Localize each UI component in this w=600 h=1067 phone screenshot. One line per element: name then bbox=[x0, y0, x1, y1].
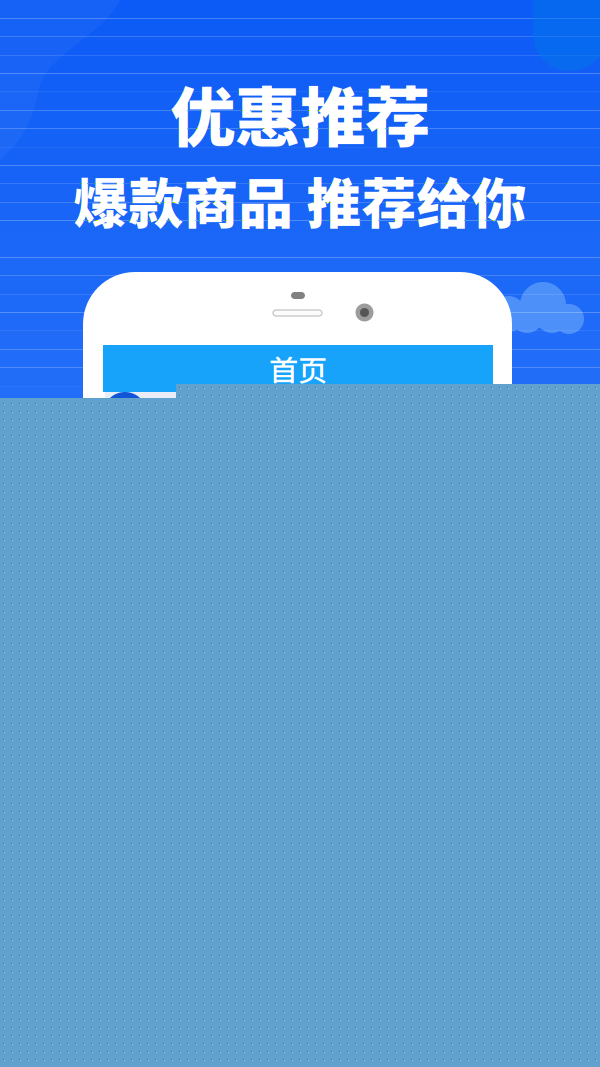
button[interactable]: 首页 bbox=[103, 345, 493, 392]
staticText: 优惠推荐 bbox=[170, 66, 430, 160]
staticText: 爆款商品 推荐给你 bbox=[73, 160, 526, 240]
staticText: 首页 bbox=[269, 347, 327, 390]
